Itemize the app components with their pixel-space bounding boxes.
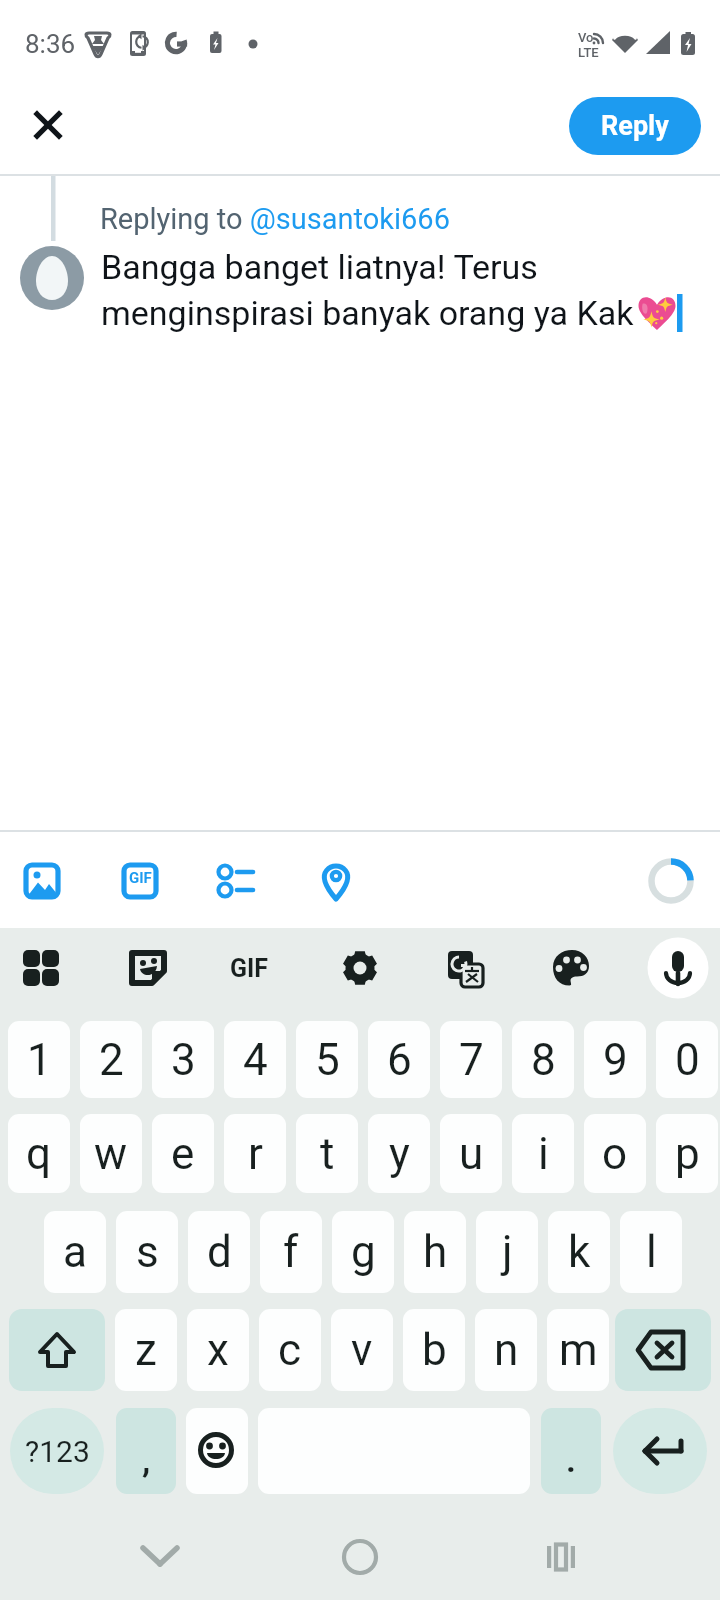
- button[interactable]: m: [547, 1309, 609, 1391]
- button[interactable]: 3: [152, 1021, 214, 1098]
- button[interactable]: j: [476, 1211, 538, 1293]
- staticText: 0: [675, 1034, 700, 1086]
- staticText: q: [26, 1128, 52, 1180]
- staticText: GIF: [230, 954, 269, 983]
- staticText: 1: [27, 1034, 52, 1086]
- button[interactable]: 8: [512, 1021, 574, 1098]
- button[interactable]: t: [296, 1114, 358, 1193]
- staticText: 8:36: [25, 29, 76, 59]
- button[interactable]: 0: [656, 1021, 718, 1098]
- button[interactable]: 7: [440, 1021, 502, 1098]
- button[interactable]: c: [259, 1309, 321, 1391]
- button[interactable]: Media: [8, 846, 76, 914]
- button[interactable]: .: [541, 1408, 601, 1494]
- button[interactable]: o: [584, 1114, 646, 1193]
- button[interactable]: 1: [8, 1021, 70, 1098]
- button[interactable]: 4: [224, 1021, 286, 1098]
- button[interactable]: Back: [120, 1516, 200, 1596]
- staticText: LTE: [578, 45, 599, 60]
- staticText: x: [207, 1324, 229, 1376]
- staticText: h: [423, 1226, 448, 1278]
- button[interactable]: Replying to @susantoki666: [100, 202, 450, 236]
- button[interactable]: Settings: [328, 936, 392, 1000]
- staticText: a: [63, 1226, 87, 1278]
- staticText: c: [278, 1324, 302, 1376]
- button[interactable]: l: [620, 1211, 682, 1293]
- button[interactable]: Backspace: [615, 1309, 711, 1391]
- staticText: t: [320, 1128, 335, 1180]
- staticText: f: [283, 1226, 299, 1278]
- button[interactable]: Enter: [613, 1408, 707, 1494]
- staticText: b: [422, 1324, 447, 1376]
- button[interactable]: g: [332, 1211, 394, 1293]
- button[interactable]: n: [475, 1309, 537, 1391]
- button[interactable]: ?123: [10, 1408, 104, 1494]
- button[interactable]: w: [80, 1114, 142, 1193]
- button[interactable]: s: [116, 1211, 178, 1293]
- staticText: s: [136, 1226, 159, 1278]
- staticText: Vo: [578, 30, 594, 45]
- button[interactable]: 9: [584, 1021, 646, 1098]
- button[interactable]: r: [224, 1114, 286, 1193]
- staticText: w: [94, 1128, 128, 1180]
- button[interactable]: ,: [116, 1408, 176, 1494]
- staticText: 2: [99, 1034, 124, 1086]
- button[interactable]: v: [331, 1309, 393, 1391]
- button[interactable]: Reply: [569, 97, 701, 155]
- staticText: ,: [142, 1440, 151, 1480]
- button[interactable]: 5: [296, 1021, 358, 1098]
- button[interactable]: Theme: [541, 936, 605, 1000]
- button[interactable]: Location: [302, 846, 370, 914]
- staticText: o: [602, 1128, 628, 1180]
- button[interactable]: k: [548, 1211, 610, 1293]
- staticText: 8: [531, 1034, 556, 1086]
- button[interactable]: Voice input: [647, 936, 711, 1000]
- button[interactable]: GIF: [220, 936, 284, 1000]
- button[interactable]: u: [440, 1114, 502, 1193]
- staticText: 5: [315, 1034, 340, 1086]
- button[interactable]: b: [403, 1309, 465, 1391]
- staticText: z: [135, 1324, 157, 1376]
- button[interactable]: q: [8, 1114, 70, 1193]
- staticText: Reply: [601, 110, 669, 142]
- button[interactable]: Stickers: [116, 936, 180, 1000]
- button[interactable]: Emoji: [186, 1408, 248, 1494]
- staticText: Bangga banget liatnya! Terus menginspira…: [101, 247, 634, 334]
- button[interactable]: 2: [80, 1021, 142, 1098]
- button[interactable]: Shift: [9, 1309, 105, 1391]
- button[interactable]: GIF: [106, 846, 174, 914]
- button[interactable]: y: [368, 1114, 430, 1193]
- button[interactable]: f: [260, 1211, 322, 1293]
- button[interactable]: 6: [368, 1021, 430, 1098]
- button[interactable]: d: [188, 1211, 250, 1293]
- button[interactable]: Close: [14, 91, 82, 159]
- button[interactable]: Translate: [433, 936, 497, 1000]
- staticText: 6: [387, 1034, 412, 1086]
- button[interactable]: Poll: [204, 846, 272, 914]
- staticText: j: [502, 1226, 513, 1278]
- button[interactable]: Home: [320, 1516, 400, 1596]
- staticText: 3: [171, 1034, 196, 1086]
- staticText: 9: [603, 1034, 628, 1086]
- staticText: 7: [459, 1034, 484, 1086]
- button[interactable]: a: [44, 1211, 106, 1293]
- button[interactable]: i: [512, 1114, 574, 1193]
- staticText: k: [568, 1226, 591, 1278]
- staticText: y: [389, 1128, 410, 1180]
- staticText: .: [566, 1440, 576, 1480]
- button[interactable]: z: [115, 1309, 177, 1391]
- button[interactable]: e: [152, 1114, 214, 1193]
- button[interactable]: Recents: [520, 1516, 600, 1596]
- button[interactable]: Apps: [9, 936, 73, 1000]
- staticText: e: [171, 1128, 195, 1180]
- staticText: v: [351, 1324, 373, 1376]
- button[interactable]: p: [656, 1114, 718, 1193]
- button[interactable]: x: [187, 1309, 249, 1391]
- staticText: n: [494, 1324, 519, 1376]
- staticText: ?123: [25, 1434, 90, 1469]
- staticText: 4: [243, 1034, 268, 1086]
- staticText: r: [248, 1128, 263, 1180]
- button[interactable]: h: [404, 1211, 466, 1293]
- staticText: i: [538, 1128, 549, 1180]
